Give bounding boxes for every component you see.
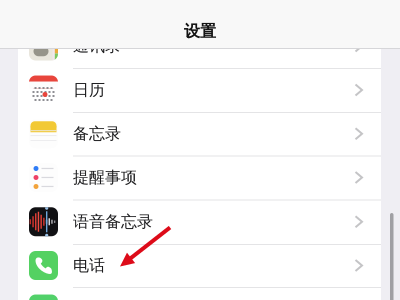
staticText: 语音备忘录 — [73, 212, 153, 232]
staticText: 电话 — [73, 256, 105, 275]
button[interactable]: 备忘录 — [18, 112, 381, 155]
button[interactable]: 电话 — [18, 244, 381, 287]
button[interactable]: 提醒事项 — [18, 155, 381, 199]
button[interactable]: 语音备忘录 — [18, 199, 381, 244]
staticText: 设置 — [184, 21, 216, 41]
button[interactable]: 通讯录 — [18, 24, 381, 68]
staticText: 日历 — [73, 80, 105, 100]
staticText: 备忘录 — [73, 124, 121, 144]
staticText: 提醒事项 — [73, 168, 137, 187]
button[interactable]: 信息 — [18, 287, 381, 300]
staticText: 通讯录 — [73, 36, 121, 56]
button[interactable]: 日历 — [18, 68, 381, 112]
